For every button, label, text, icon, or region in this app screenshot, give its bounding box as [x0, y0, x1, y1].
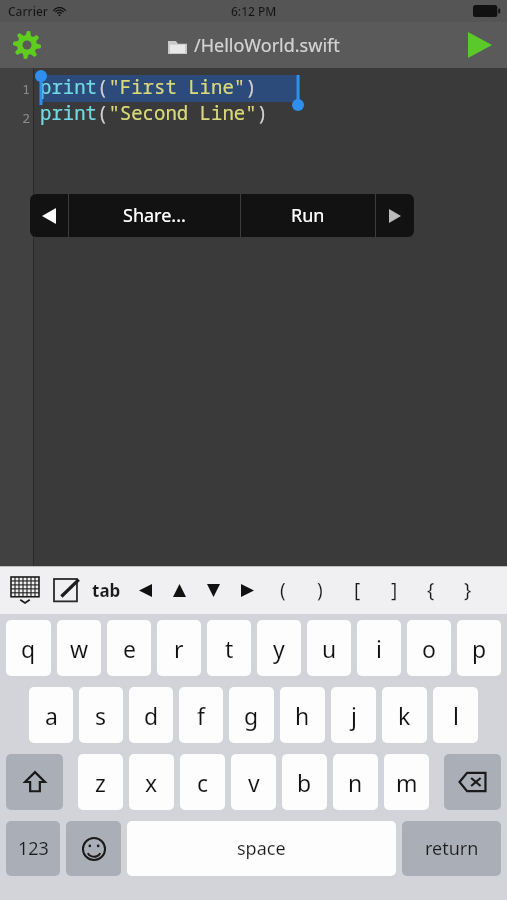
button[interactable]: h — [280, 687, 325, 743]
staticText: Share... — [123, 203, 186, 228]
staticText: [ — [354, 577, 361, 603]
staticText: w — [70, 633, 89, 664]
button[interactable]: z — [78, 754, 123, 810]
button[interactable]: Emoji — [66, 821, 121, 876]
staticText: t — [225, 633, 234, 664]
staticText: x — [145, 767, 158, 798]
button[interactable]: y — [257, 620, 301, 676]
button[interactable]: Run — [241, 194, 375, 237]
button[interactable]: a — [29, 687, 73, 743]
staticText: 123 — [18, 836, 49, 861]
button[interactable]: r — [157, 620, 201, 676]
staticText: g — [244, 700, 259, 731]
staticText: i — [376, 633, 382, 664]
button[interactable]: b — [282, 754, 327, 810]
button[interactable]: k — [382, 687, 427, 743]
staticText: v — [248, 767, 260, 798]
button[interactable]: c — [180, 754, 225, 810]
button[interactable]: Shift — [6, 754, 63, 810]
button[interactable]: o — [407, 620, 451, 676]
button[interactable]: ] — [386, 573, 402, 607]
button[interactable]: [ — [349, 573, 365, 607]
button[interactable]: Backspace — [444, 754, 501, 810]
staticText: { — [427, 577, 435, 603]
staticText: l — [453, 700, 459, 731]
button[interactable]: q — [6, 620, 51, 676]
button[interactable]: Keyboard — [8, 573, 42, 607]
button[interactable]: Run — [463, 28, 497, 62]
staticText: h — [295, 700, 310, 731]
button[interactable]: t — [207, 620, 251, 676]
staticText: ] — [391, 577, 398, 603]
button[interactable]: Share... — [69, 194, 240, 237]
staticText: p — [472, 633, 487, 664]
button[interactable]: v — [231, 754, 276, 810]
staticText: s — [95, 700, 107, 731]
staticText: print("First Line") — [40, 74, 257, 100]
staticText: y — [273, 633, 285, 664]
button[interactable]: Right — [237, 575, 257, 605]
button[interactable]: { — [423, 573, 439, 607]
staticText: 1 — [0, 80, 30, 98]
button[interactable]: i — [357, 620, 401, 676]
button[interactable]: Edit — [50, 573, 84, 607]
button[interactable]: } — [460, 573, 476, 607]
staticText: Run — [291, 203, 325, 228]
staticText: 2 — [0, 109, 30, 127]
button[interactable]: f — [179, 687, 223, 743]
staticText: } — [464, 577, 472, 603]
staticText: Carrier — [8, 3, 48, 19]
button[interactable]: space — [127, 821, 396, 876]
staticText: 6:12 PM — [231, 3, 277, 19]
button[interactable]: j — [331, 687, 376, 743]
button[interactable]: s — [79, 687, 123, 743]
button[interactable]: tab — [92, 579, 121, 602]
button[interactable]: 123 — [6, 821, 60, 876]
button[interactable]: Up — [169, 575, 189, 605]
button[interactable]: u — [307, 620, 351, 676]
staticText: ( — [280, 577, 286, 603]
staticText: /HelloWorld.swift — [194, 33, 340, 58]
button[interactable]: m — [384, 754, 429, 810]
button[interactable]: w — [57, 620, 101, 676]
button[interactable]: Settings — [9, 27, 45, 63]
staticText: d — [144, 700, 159, 731]
button[interactable]: n — [333, 754, 378, 810]
button[interactable]: Next — [376, 194, 414, 237]
staticText: k — [398, 700, 411, 731]
button[interactable]: Previous — [30, 194, 68, 237]
staticText: c — [197, 767, 209, 798]
button[interactable]: p — [457, 620, 501, 676]
staticText: return — [425, 836, 479, 861]
staticText: q — [21, 633, 36, 664]
staticText: o — [422, 633, 436, 664]
staticText: f — [197, 700, 205, 731]
staticText: a — [45, 700, 58, 731]
button[interactable]: Left — [135, 575, 155, 605]
staticText: r — [174, 633, 184, 664]
staticText: ) — [317, 577, 323, 603]
staticText: z — [95, 767, 106, 798]
staticText: m — [396, 767, 418, 798]
button[interactable]: d — [129, 687, 173, 743]
staticText: e — [123, 633, 136, 664]
staticText: n — [348, 767, 363, 798]
staticText: u — [322, 633, 337, 664]
button[interactable]: ) — [312, 573, 328, 607]
staticText: print("Second Line") — [40, 100, 269, 126]
button[interactable]: l — [433, 687, 478, 743]
button[interactable]: return — [402, 821, 501, 876]
staticText: j — [351, 700, 357, 731]
button[interactable]: x — [129, 754, 174, 810]
button[interactable]: e — [107, 620, 151, 676]
staticText: b — [297, 767, 312, 798]
button[interactable]: ( — [275, 573, 291, 607]
button[interactable]: g — [229, 687, 274, 743]
button[interactable]: Down — [203, 575, 223, 605]
staticText: space — [237, 836, 286, 861]
